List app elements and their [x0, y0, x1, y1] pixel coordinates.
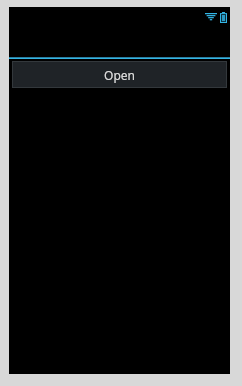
staticText: Open	[104, 67, 135, 83]
other: Wi-Fi signal	[205, 13, 217, 23]
other: Battery status	[220, 12, 227, 23]
button[interactable]: Open	[12, 61, 227, 88]
